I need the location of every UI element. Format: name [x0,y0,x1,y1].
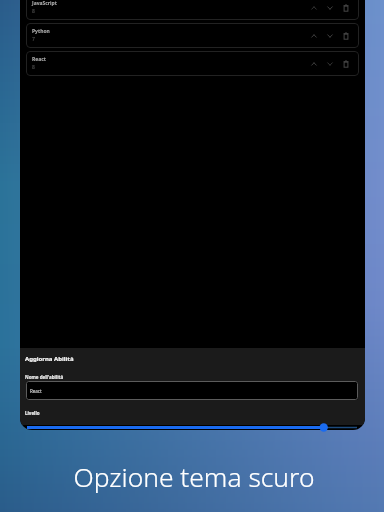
button[interactable]: Move up [306,0,322,16]
button[interactable]: Move up [306,28,322,44]
button[interactable]: Delete [338,0,354,16]
staticText: Nome dell'abilità [25,374,64,380]
button[interactable]: Move down [322,56,338,72]
staticText: Opzione tema scuro [2,459,384,495]
staticText: Livello [25,410,40,416]
button[interactable]: Move down [322,0,338,16]
button[interactable]: Python [26,23,359,48]
staticText: Python [32,28,50,35]
button[interactable]: Livello slider [27,423,357,432]
staticText: 8 [32,8,35,15]
button[interactable]: React [26,381,358,400]
staticText: JavaScript [32,0,57,7]
button[interactable]: React [26,51,359,76]
button[interactable]: Delete [338,28,354,44]
staticText: React [30,388,42,394]
staticText: React [32,56,47,63]
staticText: 8 [32,64,35,71]
button[interactable]: Move up [306,56,322,72]
staticText: Aggiorna Abilità [25,355,74,363]
button[interactable]: Delete [338,56,354,72]
button[interactable]: Move down [322,28,338,44]
staticText: 7 [32,36,35,43]
button[interactable]: JavaScript [26,0,359,20]
